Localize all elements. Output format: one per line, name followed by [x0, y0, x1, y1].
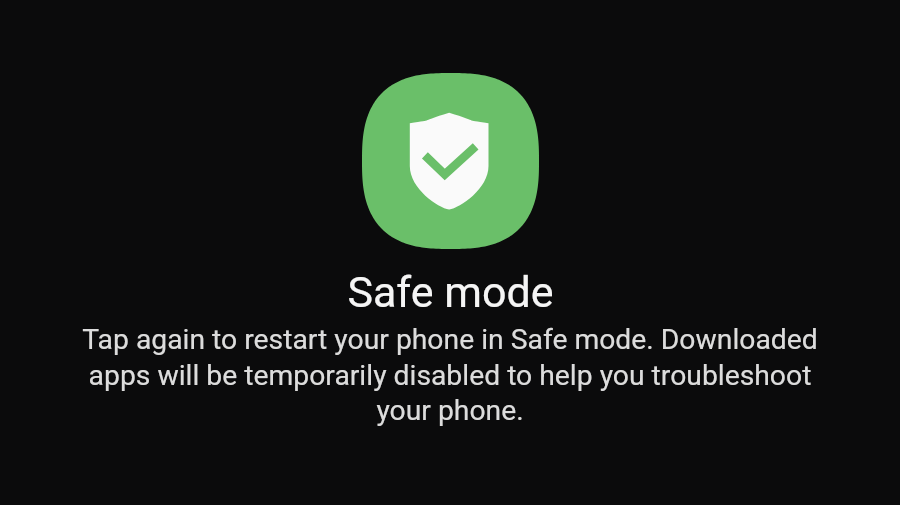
- button[interactable]: Safe mode: [362, 73, 539, 249]
- button[interactable]: Tap again to restart in Safe mode: [0, 0, 900, 505]
- staticText: Safe mode: [347, 267, 554, 317]
- staticText: Tap again to restart your phone in Safe …: [70, 323, 830, 427]
